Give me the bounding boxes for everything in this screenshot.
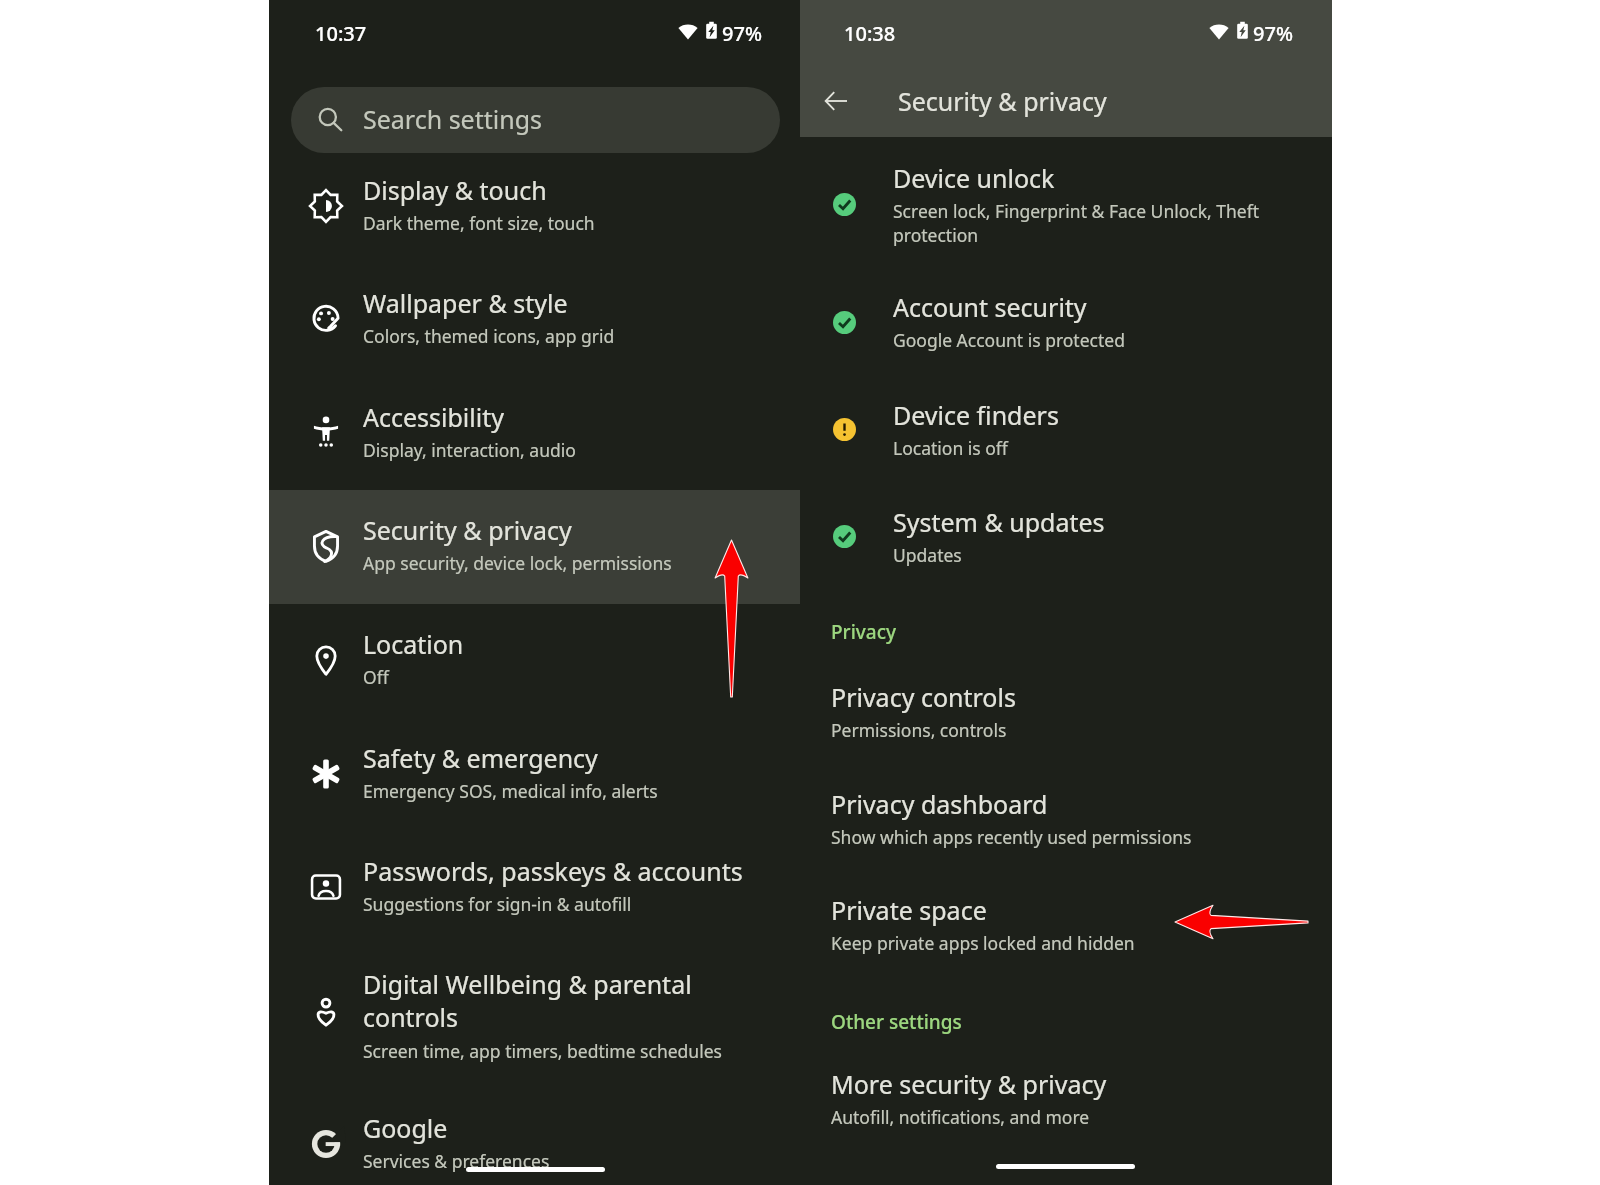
button[interactable]: Passwords, passkeys & accounts <box>269 831 800 945</box>
staticText: Digital Wellbeing & parental controls <box>363 967 703 1034</box>
staticText: 10:38 <box>844 20 896 47</box>
staticText: Show which apps recently used permission… <box>831 825 1192 849</box>
staticText: Services & preferences <box>363 1149 550 1173</box>
staticText: System & updates <box>893 505 1105 539</box>
button[interactable]: System & updates <box>800 485 1332 585</box>
button[interactable]: Search settings <box>291 87 780 153</box>
button[interactable]: Safety & emergency <box>269 718 800 832</box>
staticText: Keep private apps locked and hidden <box>831 931 1135 955</box>
staticText: App security, device lock, permissions <box>363 551 672 575</box>
staticText: Location is off <box>893 436 1008 460</box>
staticText: Suggestions for sign-in & autofill <box>363 892 632 916</box>
staticText: protection <box>893 223 979 247</box>
button[interactable]: Back <box>812 77 860 125</box>
staticText: Device finders <box>893 398 1059 432</box>
staticText: Account security <box>893 290 1087 324</box>
staticText: Display, interaction, audio <box>363 438 576 462</box>
staticText: Dark theme, font size, touch <box>363 211 595 235</box>
staticText: Screen time, app timers, bedtime schedul… <box>363 1039 722 1063</box>
staticText: Permissions, controls <box>831 718 1007 742</box>
staticText: Safety & emergency <box>363 741 783 775</box>
staticText: Security & privacy <box>898 84 1107 118</box>
staticText: 97% <box>722 20 762 47</box>
staticText: Updates <box>893 543 962 567</box>
staticText: Colors, themed icons, app grid <box>363 324 615 348</box>
staticText: Device unlock <box>893 161 1055 195</box>
button[interactable]: Device finders <box>800 378 1332 478</box>
staticText: Passwords, passkeys & accounts <box>363 854 783 888</box>
staticText: Display & touch <box>363 173 783 207</box>
staticText: Emergency SOS, medical info, alerts <box>363 779 658 803</box>
button[interactable]: Account security <box>800 270 1332 370</box>
staticText: Privacy controls <box>831 680 1016 714</box>
staticText: Autofill, notifications, and more <box>831 1105 1090 1129</box>
button[interactable]: Location <box>269 604 800 718</box>
staticText: Other settings <box>831 1009 962 1035</box>
button[interactable]: More security & privacy <box>800 1047 1332 1147</box>
button[interactable]: Privacy dashboard <box>800 767 1332 867</box>
staticText: Privacy dashboard <box>831 787 1048 821</box>
staticText: Security & privacy <box>363 513 783 547</box>
staticText: 10:37 <box>315 20 367 47</box>
staticText: Google <box>363 1111 783 1145</box>
staticText: Location <box>363 627 783 661</box>
button[interactable]: Privacy controls <box>800 660 1332 760</box>
staticText: Privacy <box>831 619 896 645</box>
button[interactable]: Security & privacy <box>269 490 800 604</box>
button[interactable]: Device unlock <box>800 141 1332 269</box>
staticText: Private space <box>831 893 987 927</box>
button[interactable]: Private space <box>800 873 1332 973</box>
staticText: Google Account is protected <box>893 328 1125 352</box>
button[interactable]: Digital Wellbeing & parental controls <box>269 944 800 1096</box>
staticText: Search settings <box>363 102 543 136</box>
staticText: Off <box>363 665 389 689</box>
staticText: 97% <box>1253 20 1293 47</box>
button[interactable]: Google <box>269 1088 800 1185</box>
button[interactable]: Wallpaper & style <box>269 263 800 377</box>
staticText: Screen lock, Fingerprint & Face Unlock, … <box>893 199 1260 223</box>
button[interactable]: Display & touch <box>269 150 800 264</box>
staticText: Accessibility <box>363 400 783 434</box>
staticText: More security & privacy <box>831 1067 1107 1101</box>
button[interactable]: Accessibility <box>269 377 800 491</box>
staticText: Wallpaper & style <box>363 286 783 320</box>
